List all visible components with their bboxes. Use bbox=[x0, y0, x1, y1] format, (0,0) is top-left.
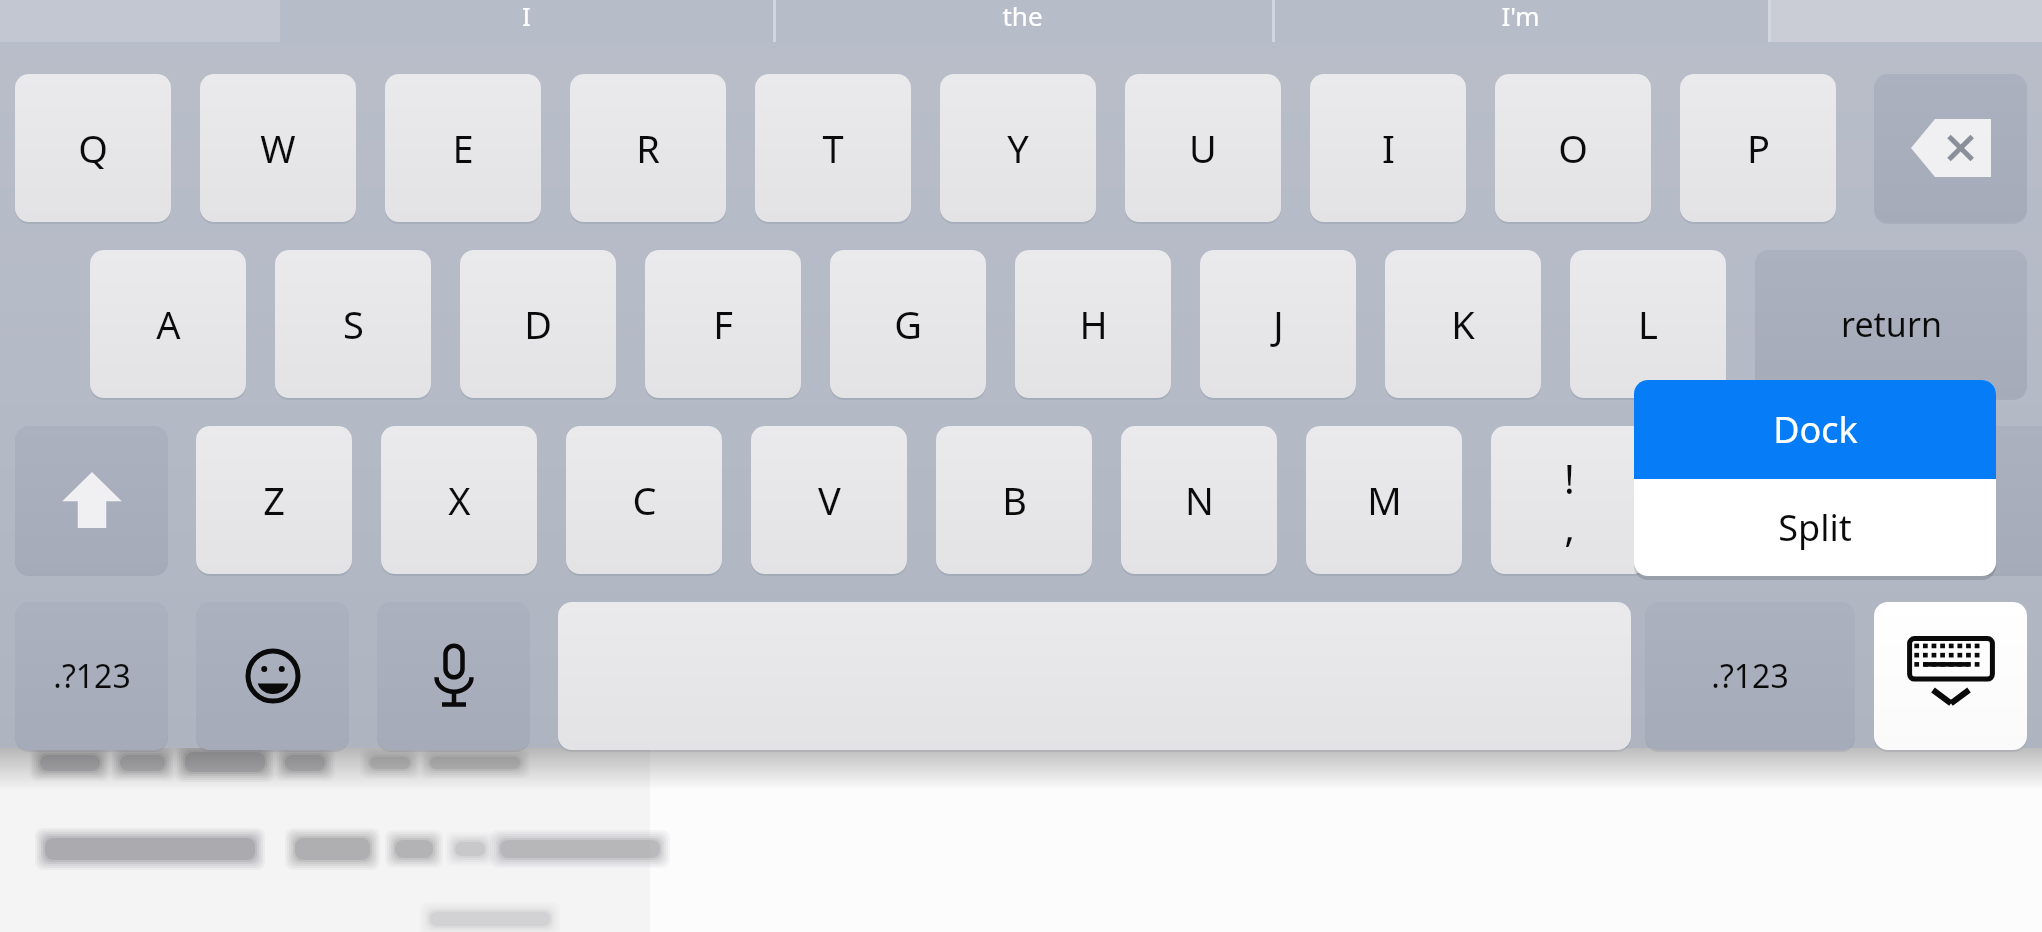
staticText: O bbox=[1558, 122, 1588, 174]
button[interactable]: Emoji bbox=[196, 602, 349, 750]
button[interactable]: S bbox=[275, 250, 431, 398]
button[interactable]: J bbox=[1200, 250, 1356, 398]
staticText: X bbox=[448, 474, 471, 526]
button[interactable]: U bbox=[1125, 74, 1281, 222]
staticText: H bbox=[1079, 298, 1108, 350]
staticText: U bbox=[1189, 122, 1217, 174]
button[interactable]: I'm bbox=[1272, 0, 1768, 42]
button[interactable]: G bbox=[830, 250, 986, 398]
staticText: K bbox=[1451, 298, 1475, 350]
staticText: V bbox=[818, 474, 841, 526]
button[interactable]: Q bbox=[15, 74, 171, 222]
button[interactable]: P bbox=[1680, 74, 1836, 222]
staticText: G bbox=[894, 298, 922, 350]
button[interactable]: Dictation bbox=[377, 602, 530, 750]
button[interactable]: O bbox=[1495, 74, 1651, 222]
button[interactable]: Dock bbox=[1634, 380, 1996, 479]
button[interactable]: Backspace bbox=[1874, 74, 2027, 222]
staticText: L bbox=[1638, 298, 1658, 350]
button[interactable]: L bbox=[1570, 250, 1726, 398]
staticText: I'm bbox=[1501, 0, 1540, 33]
button[interactable]: Z bbox=[196, 426, 352, 574]
button[interactable]: I bbox=[1310, 74, 1466, 222]
staticText: , bbox=[1564, 499, 1575, 553]
staticText: Q bbox=[78, 122, 108, 174]
staticText: ! bbox=[1564, 451, 1575, 505]
staticText: S bbox=[343, 298, 364, 350]
staticText: Y bbox=[1007, 122, 1029, 174]
staticText: P bbox=[1747, 122, 1770, 174]
button[interactable]: .?123 bbox=[15, 602, 168, 750]
button[interactable]: F bbox=[645, 250, 801, 398]
button[interactable]: Shift bbox=[15, 426, 168, 574]
button[interactable]: ! bbox=[1491, 426, 1647, 574]
staticText: J bbox=[1273, 298, 1284, 350]
staticText: I bbox=[1382, 122, 1395, 174]
button[interactable]: Y bbox=[940, 74, 1096, 222]
button[interactable]: the bbox=[773, 0, 1272, 42]
button[interactable]: C bbox=[566, 426, 722, 574]
staticText: A bbox=[156, 298, 181, 350]
staticText: the bbox=[1002, 0, 1043, 33]
staticText: Z bbox=[263, 474, 285, 526]
button[interactable]: R bbox=[570, 74, 726, 222]
button[interactable]: V bbox=[751, 426, 907, 574]
staticText: M bbox=[1367, 474, 1402, 526]
button[interactable]: D bbox=[460, 250, 616, 398]
staticText: E bbox=[452, 122, 474, 174]
button[interactable]: M bbox=[1306, 426, 1462, 574]
button[interactable]: N bbox=[1121, 426, 1277, 574]
button[interactable]: K bbox=[1385, 250, 1541, 398]
button[interactable]: Hide keyboard bbox=[1874, 602, 2027, 750]
staticText: .?123 bbox=[1711, 654, 1789, 698]
staticText: D bbox=[524, 298, 552, 350]
staticText: F bbox=[713, 298, 733, 350]
button[interactable]: A bbox=[90, 250, 246, 398]
staticText: Dock bbox=[1773, 405, 1858, 454]
staticText: C bbox=[632, 474, 657, 526]
button[interactable]: T bbox=[755, 74, 911, 222]
staticText: W bbox=[260, 122, 296, 174]
staticText: B bbox=[1002, 474, 1027, 526]
staticText: Split bbox=[1778, 503, 1852, 552]
button[interactable]: B bbox=[936, 426, 1092, 574]
staticText: N bbox=[1185, 474, 1214, 526]
staticText: R bbox=[636, 122, 660, 174]
button[interactable]: Split bbox=[1634, 479, 1996, 576]
staticText: T bbox=[822, 122, 844, 174]
staticText: I bbox=[522, 0, 531, 33]
button[interactable]: X bbox=[381, 426, 537, 574]
button[interactable]: .?123 bbox=[1645, 602, 1855, 750]
button[interactable]: E bbox=[385, 74, 541, 222]
staticText: return bbox=[1841, 301, 1942, 347]
staticText: .?123 bbox=[53, 654, 131, 698]
button[interactable]: Shift bbox=[1951, 426, 2042, 574]
button[interactable]: H bbox=[1015, 250, 1171, 398]
button[interactable]: W bbox=[200, 74, 356, 222]
button[interactable]: I bbox=[280, 0, 773, 42]
button[interactable]: return bbox=[1755, 250, 2027, 398]
